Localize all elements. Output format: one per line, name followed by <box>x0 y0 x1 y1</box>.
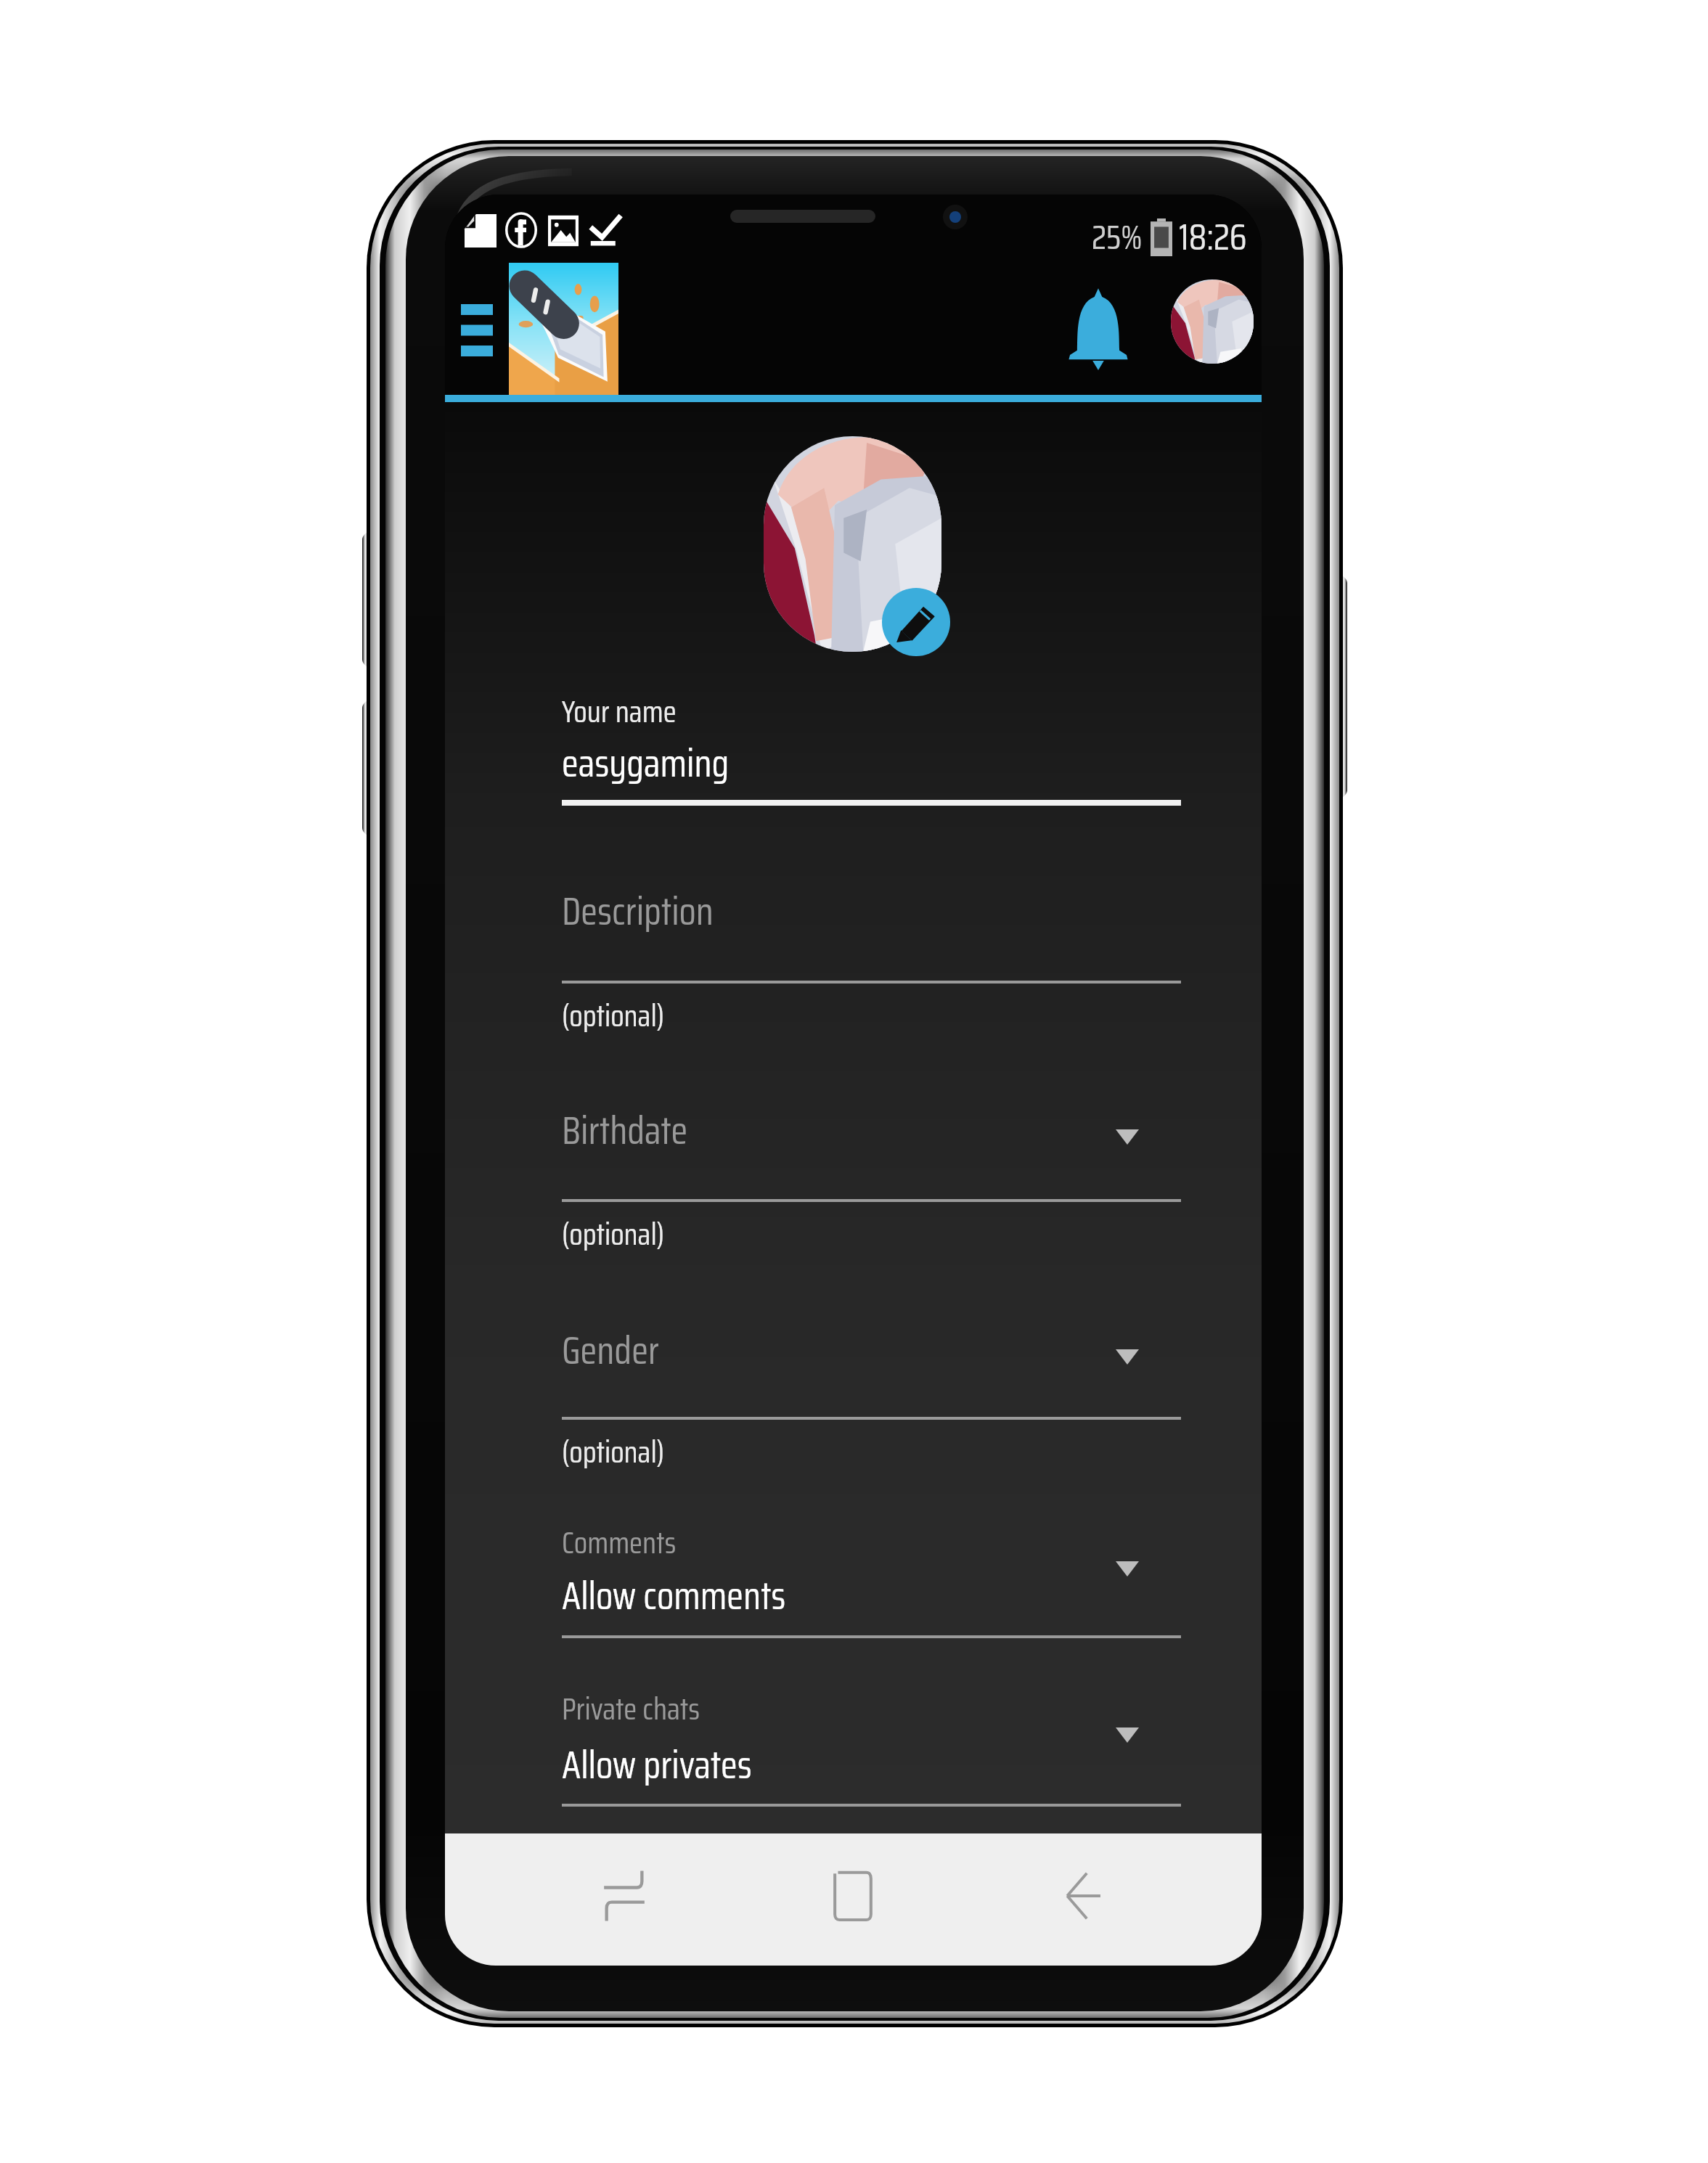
button[interactable]: Birthdate <box>562 1092 1181 1179</box>
staticText: Birthdate <box>562 1100 688 1161</box>
button[interactable]: Your name: easygaming <box>562 682 1181 806</box>
staticText: Your name <box>562 687 677 735</box>
staticText: (optional) <box>562 1428 665 1476</box>
button[interactable]: Home <box>802 1845 904 1947</box>
staticText: Allow comments <box>562 1566 786 1626</box>
button[interactable]: App logo <box>509 263 618 395</box>
button[interactable]: Edit profile picture <box>882 588 950 656</box>
staticText: Comments <box>562 1518 677 1566</box>
staticText: (optional) <box>562 1210 665 1258</box>
staticText: Allow privates <box>562 1735 752 1795</box>
button[interactable]: Comments: Allow comments <box>562 1518 1181 1638</box>
button[interactable]: Back <box>1031 1845 1133 1947</box>
button[interactable]: Menu <box>445 289 509 372</box>
staticText: Private chats <box>562 1685 700 1733</box>
button[interactable]: Notifications <box>1051 274 1145 383</box>
button[interactable]: Description (optional) <box>562 871 1181 987</box>
button[interactable]: Recents <box>573 1845 675 1947</box>
staticText: easygaming <box>562 733 730 793</box>
button[interactable]: Profile picture <box>764 436 941 652</box>
button[interactable]: Profile <box>1171 279 1254 364</box>
staticText: Description <box>562 881 714 941</box>
button[interactable]: Private chats: Allow privates <box>562 1686 1181 1806</box>
button[interactable]: Gender <box>562 1312 1181 1399</box>
staticText: Gender <box>562 1320 659 1381</box>
staticText: 18:26 <box>1179 208 1247 266</box>
staticText: (optional) <box>562 991 665 1039</box>
staticText: 25% <box>1092 211 1143 263</box>
